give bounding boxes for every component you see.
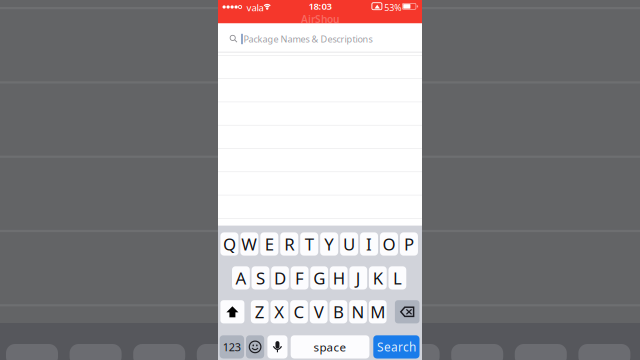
- button[interactable]: O: [380, 232, 398, 256]
- staticText: C: [293, 300, 304, 323]
- staticText: H: [333, 266, 345, 289]
- button[interactable]: D: [271, 266, 289, 289]
- button[interactable]: X: [270, 300, 288, 323]
- staticText: T: [305, 233, 314, 255]
- staticText: J: [356, 266, 361, 289]
- staticText: Search: [377, 339, 416, 355]
- staticText: D: [274, 266, 286, 289]
- staticText: O: [382, 233, 395, 255]
- staticText: K: [373, 266, 383, 289]
- staticText: M: [370, 300, 385, 323]
- staticText: G: [313, 266, 325, 289]
- button[interactable]: P: [400, 232, 418, 256]
- button[interactable]: N: [349, 300, 367, 323]
- button[interactable]: Y: [320, 232, 338, 256]
- button[interactable]: Delete: [395, 300, 419, 323]
- staticText: I: [366, 233, 372, 255]
- button[interactable]: C: [290, 300, 308, 323]
- staticText: Package Names & Descriptions: [244, 33, 373, 45]
- staticText: AirShou: [301, 12, 339, 26]
- button[interactable]: T: [300, 232, 318, 256]
- button[interactable]: G: [310, 266, 328, 289]
- staticText: A: [235, 266, 246, 289]
- button[interactable]: space: [291, 335, 369, 358]
- button[interactable]: S: [252, 266, 269, 289]
- staticText: L: [393, 266, 402, 289]
- button[interactable]: M: [369, 300, 387, 323]
- staticText: 18:03: [308, 0, 331, 13]
- button[interactable]: K: [369, 266, 387, 289]
- staticText: W: [241, 233, 257, 255]
- staticText: B: [333, 300, 344, 323]
- staticText: X: [274, 300, 284, 323]
- staticText: S: [256, 266, 265, 289]
- staticText: 53%: [384, 2, 401, 14]
- staticText: Y: [324, 233, 334, 255]
- staticText: Z: [255, 300, 265, 323]
- button[interactable]: W: [240, 232, 258, 256]
- button[interactable]: J: [349, 266, 367, 289]
- staticText: R: [284, 233, 294, 255]
- button[interactable]: H: [330, 266, 348, 289]
- button[interactable]: B: [329, 300, 347, 323]
- button[interactable]: Search: [373, 335, 419, 358]
- staticText: P: [404, 233, 414, 255]
- staticText: 123: [223, 339, 241, 354]
- button[interactable]: Q: [220, 232, 238, 256]
- staticText: vala: [246, 1, 263, 14]
- button[interactable]: Emoji: [246, 335, 264, 358]
- button[interactable]: 123: [220, 335, 244, 358]
- button[interactable]: R: [280, 232, 298, 256]
- button[interactable]: Dictate: [267, 335, 287, 358]
- staticText: F: [295, 266, 304, 289]
- button[interactable]: F: [291, 266, 308, 289]
- staticText: N: [352, 300, 365, 323]
- button[interactable]: L: [388, 266, 406, 289]
- staticText: E: [265, 233, 274, 255]
- button[interactable]: V: [310, 300, 328, 323]
- button[interactable]: E: [260, 232, 278, 256]
- button[interactable]: Z: [251, 300, 269, 323]
- staticText: U: [343, 233, 355, 255]
- button[interactable]: A: [232, 266, 250, 289]
- staticText: space: [314, 339, 347, 355]
- button[interactable]: U: [340, 232, 358, 256]
- button[interactable]: Shift: [220, 300, 244, 323]
- button[interactable]: I: [360, 232, 378, 256]
- staticText: Q: [223, 233, 236, 255]
- staticText: V: [314, 300, 324, 323]
